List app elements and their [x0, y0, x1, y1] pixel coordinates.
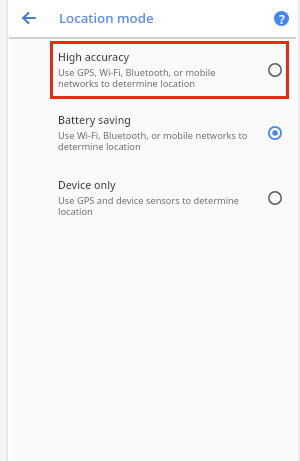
staticText: ? — [279, 11, 285, 26]
button[interactable]: Device only — [0, 170, 300, 233]
staticText: Use Wi-Fi, Bluetooth, or mobile networks… — [58, 129, 248, 153]
staticText: Use GPS, Wi-Fi, Bluetooth, or mobile net… — [58, 66, 216, 90]
staticText: Use GPS and device sensors to determine … — [58, 194, 240, 218]
staticText: Device only — [58, 178, 116, 192]
staticText: Location mode — [59, 9, 154, 27]
button[interactable]: Help — [269, 6, 293, 30]
staticText: Battery saving — [58, 113, 131, 127]
button[interactable]: Battery saving — [0, 105, 300, 168]
staticText: High accuracy — [58, 50, 129, 64]
button[interactable]: High accuracy — [0, 42, 300, 105]
button[interactable]: Back — [16, 6, 40, 30]
